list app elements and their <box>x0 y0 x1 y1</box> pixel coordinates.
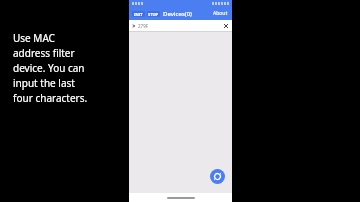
button[interactable]: About <box>212 9 229 18</box>
staticText: input the last <box>13 76 75 90</box>
button[interactable]: Clear <box>222 22 229 29</box>
staticText: four characters. <box>13 91 88 105</box>
staticText: device. You can <box>13 61 85 75</box>
staticText: Devices(0) <box>163 10 192 18</box>
staticText: About <box>213 10 228 17</box>
staticText: address filter <box>13 46 75 60</box>
staticText: INIT <box>134 12 143 17</box>
staticText: Use MAC <box>13 31 55 45</box>
button[interactable]: Refresh scan <box>210 169 225 184</box>
staticText: STOP <box>148 12 159 17</box>
staticText: 279F <box>138 23 149 29</box>
button[interactable]: STOP <box>147 11 160 17</box>
button[interactable]: 279F <box>129 20 232 31</box>
button[interactable]: INIT <box>132 11 145 17</box>
